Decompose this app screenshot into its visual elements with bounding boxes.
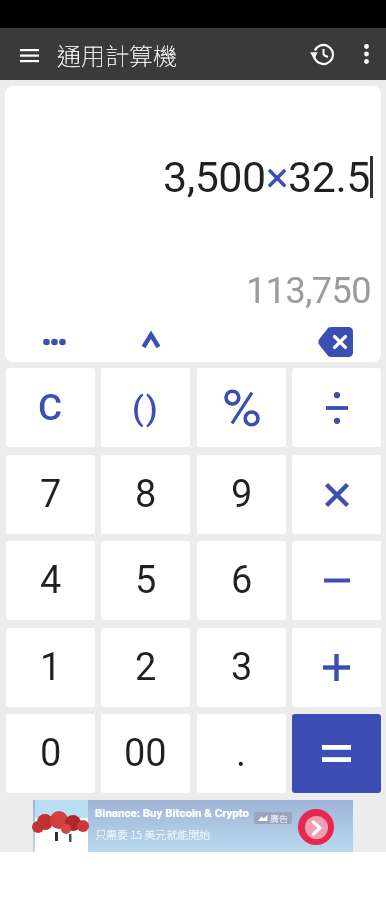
button[interactable] — [126, 322, 175, 358]
button[interactable]: 7 — [6, 455, 95, 534]
staticText: 1 — [40, 645, 62, 690]
button[interactable]: 2 — [101, 628, 190, 707]
button[interactable] — [292, 541, 381, 620]
button[interactable]: 6 — [197, 541, 286, 620]
staticText: 6 — [231, 558, 253, 603]
button[interactable]: 0 — [6, 714, 95, 793]
staticText: C — [38, 386, 63, 429]
staticText: Binance: Buy Bitcoin & Crypto — [95, 806, 250, 819]
staticText: . — [236, 731, 247, 776]
button[interactable]: 4 — [6, 541, 95, 620]
button[interactable]: C — [6, 368, 95, 447]
button[interactable]: Binance: Buy Bitcoin & Crypto — [33, 800, 353, 852]
button[interactable]: 5 — [101, 541, 190, 620]
staticText: 2 — [135, 645, 157, 690]
button[interactable]: 8 — [101, 455, 190, 534]
staticText: 5 — [135, 558, 157, 603]
staticText: 只需要 15 美元就能開始 — [95, 826, 211, 842]
button[interactable]: 3 — [197, 628, 286, 707]
staticText: 113,750 — [246, 270, 371, 312]
button[interactable] — [292, 368, 381, 447]
button[interactable] — [292, 714, 381, 793]
button[interactable]: 1 — [6, 628, 95, 707]
staticText: 00 — [124, 731, 167, 776]
button[interactable] — [292, 628, 381, 707]
button[interactable]: () — [101, 368, 190, 447]
staticText: 通用計算機 — [57, 37, 177, 72]
button[interactable] — [29, 324, 79, 360]
button[interactable]: 00 — [101, 714, 190, 793]
staticText: 0 — [40, 731, 62, 776]
button[interactable]: 9 — [197, 455, 286, 534]
button[interactable] — [197, 368, 286, 447]
staticText: 3,500×32.5 — [163, 152, 370, 202]
button[interactable] — [298, 809, 334, 845]
staticText: () — [132, 388, 160, 428]
button[interactable] — [292, 455, 381, 534]
button[interactable] — [12, 44, 46, 66]
button[interactable] — [307, 322, 363, 362]
button[interactable]: . — [197, 714, 286, 793]
staticText: 9 — [231, 472, 253, 517]
button[interactable] — [350, 38, 382, 70]
button[interactable] — [306, 38, 338, 70]
staticText: 8 — [135, 472, 157, 517]
staticText: 廣告 — [270, 812, 289, 824]
staticText: 4 — [40, 558, 62, 603]
staticText: 3 — [231, 645, 253, 690]
staticText: 7 — [40, 472, 62, 517]
